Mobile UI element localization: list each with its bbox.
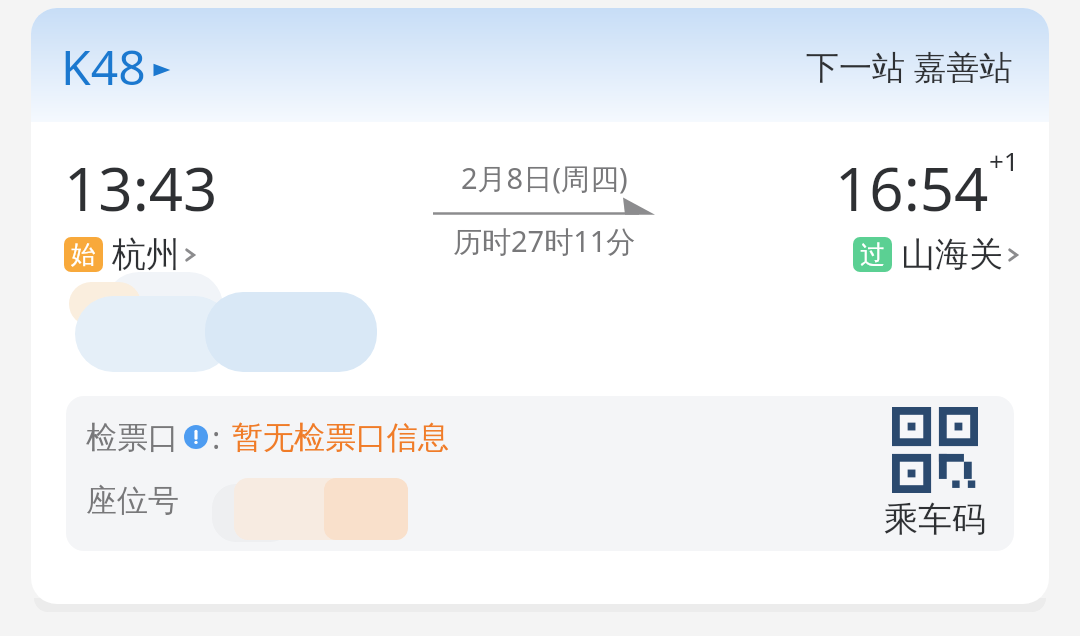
staticText: +1 [989, 143, 1019, 178]
staticText: 乘车码 [884, 498, 986, 541]
button[interactable]: 过 [853, 233, 1019, 276]
button[interactable]: 始 [64, 233, 196, 276]
button[interactable]: 乘车码 [884, 407, 986, 541]
staticText: 2月8日(周四) [461, 158, 628, 198]
staticText: 下一站 嘉善站 [806, 44, 1013, 89]
staticText: K48 [61, 34, 146, 99]
staticText: 座位号 [86, 481, 179, 520]
staticText: 16:54 [835, 147, 989, 229]
staticText: 山海关 [901, 233, 1003, 276]
staticText: 暂无检票口信息 [232, 418, 449, 457]
staticText: 历时27时11分 [453, 221, 636, 261]
staticText: : [212, 416, 221, 458]
staticText: 检票口 [86, 418, 179, 457]
button[interactable]: K48 [31, 8, 1049, 122]
staticText: 杭州 [112, 233, 180, 276]
staticText: 始 [71, 239, 96, 270]
staticText: 过 [860, 239, 885, 270]
staticText: 13:43 [64, 147, 218, 229]
